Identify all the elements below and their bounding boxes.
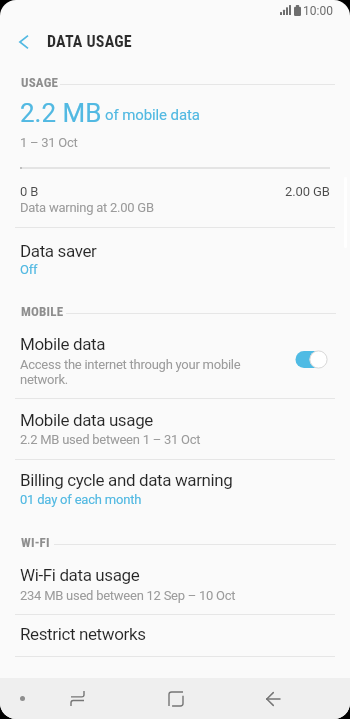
staticText: of mobile data [105,106,200,124]
staticText: 10:00 [303,4,333,18]
staticText: USAGE [21,75,59,90]
staticText: Restrict networks [20,624,146,644]
button[interactable] [0,554,350,613]
staticText: MOBILE [21,304,64,319]
button[interactable] [0,460,350,519]
staticText: DATA USAGE [47,32,132,51]
staticText: 2.2 MB [20,98,102,128]
button[interactable]: Mobile data switch [292,348,332,371]
staticText: Mobile data [20,334,106,354]
staticText: 2.2 MB used between 1 – 31 Oct [20,432,201,447]
staticText: 0 B [20,184,39,199]
staticText: WI-FI [21,535,50,550]
button[interactable] [0,399,350,458]
staticText: Data warning at 2.00 GB [20,200,154,215]
staticText: 2.00 GB [285,184,330,199]
staticText: 234 MB used between 12 Sep – 10 Oct [20,588,236,603]
staticText: 01 day of each month [20,492,142,507]
button[interactable]: Navigate up [5,24,41,60]
button[interactable] [0,615,350,656]
staticText: Mobile data usage [20,410,153,430]
button[interactable]: Recent apps [155,678,196,719]
staticText: 1 – 31 Oct [20,135,78,150]
staticText: Access the internet through your mobile … [20,357,246,387]
button[interactable] [0,228,350,280]
staticText: Billing cycle and data warning [20,470,233,490]
staticText: Data saver [20,241,97,261]
button[interactable] [0,324,350,396]
staticText: Off [20,262,38,277]
staticText: Wi-Fi data usage [20,565,140,585]
button[interactable]: Back [252,678,293,719]
button[interactable]: Multi window [57,678,98,719]
